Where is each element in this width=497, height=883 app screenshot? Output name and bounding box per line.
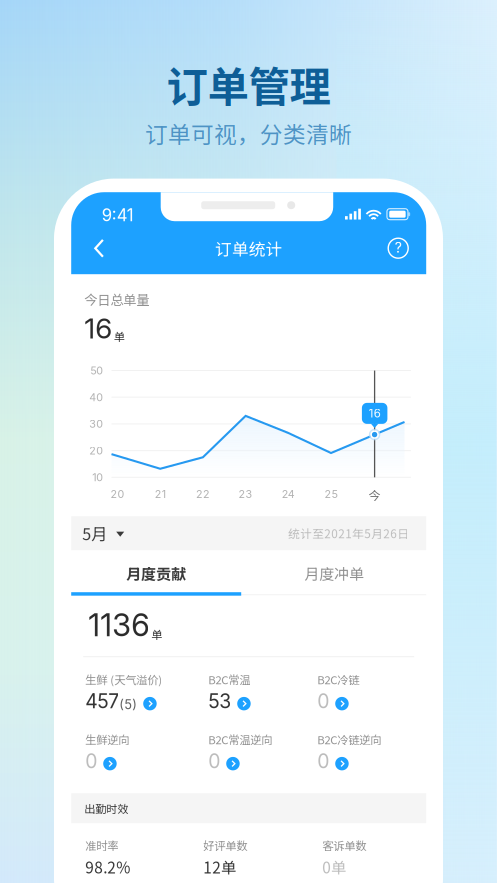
staticText: 出勤时效 (84, 800, 128, 816)
staticText: 单 (114, 328, 125, 344)
button[interactable]: B2C冷链逆向 (317, 733, 429, 771)
staticText: 9:41 (102, 205, 134, 225)
button[interactable]: 月度冲单 (249, 552, 419, 594)
button[interactable]: B2C常温逆向 (208, 733, 320, 771)
staticText: 今 (369, 486, 381, 503)
staticText: 40 (89, 391, 103, 404)
staticText: 0 (208, 749, 220, 773)
staticText: 好评单数 (203, 837, 247, 853)
staticText: 客诉单数 (322, 837, 366, 853)
staticText: 16 (84, 311, 112, 345)
staticText: 50 (90, 364, 103, 377)
staticText: 统计至2021年5月26日 (288, 525, 409, 542)
staticText: 25 (324, 488, 337, 501)
button[interactable]: 生鲜 (天气溢价) (85, 673, 197, 711)
staticText: 21 (155, 488, 166, 501)
staticText: 20 (89, 444, 103, 457)
staticText: 98.2% (85, 856, 130, 878)
staticText: B2C常温逆向 (208, 731, 272, 747)
staticText: B2C常温 (208, 671, 250, 687)
button[interactable]: B2C冷链 (317, 673, 429, 711)
staticText: 单 (151, 626, 162, 642)
staticText: 准时率 (85, 837, 118, 853)
staticText: 0 (317, 689, 329, 713)
staticText: 0 (317, 749, 329, 773)
staticText: 订单可视，分类清晰 (145, 117, 352, 149)
staticText: 订单管理 (166, 54, 330, 114)
staticText: 20 (110, 488, 124, 501)
staticText: 10 (92, 471, 103, 484)
button[interactable]: 生鲜逆向 (85, 733, 197, 771)
staticText: 生鲜 (天气溢价) (85, 671, 162, 687)
staticText: 1136 (88, 607, 149, 644)
staticText: 12单 (203, 856, 236, 878)
staticText: 457 (85, 689, 119, 713)
staticText: 30 (89, 417, 103, 430)
button[interactable]: B2C常温 (208, 673, 320, 711)
staticText: B2C冷链逆向 (317, 731, 381, 747)
staticText: 16 (369, 406, 381, 420)
staticText: 0单 (322, 856, 346, 878)
staticText: 24 (282, 488, 295, 501)
staticText: 5月 (82, 522, 107, 545)
staticText: 53 (208, 689, 231, 713)
button[interactable]: 月度贡献 (71, 552, 241, 594)
staticText: 订单统计 (215, 236, 283, 260)
staticText: 月度贡献 (126, 562, 186, 584)
staticText: 0 (85, 749, 97, 773)
staticText: 今日总单量 (84, 289, 149, 309)
button[interactable]: 返回 (80, 230, 118, 266)
staticText: 23 (239, 488, 253, 501)
staticText: (5) (119, 697, 137, 712)
staticText: 月度冲单 (304, 562, 364, 584)
staticText: 生鲜逆向 (85, 731, 129, 747)
button[interactable]: 选择月份 (82, 516, 142, 550)
staticText: B2C冷链 (317, 671, 359, 687)
staticText: ? (395, 239, 402, 256)
staticText: 22 (196, 488, 210, 501)
button[interactable]: 帮助 (379, 230, 417, 266)
